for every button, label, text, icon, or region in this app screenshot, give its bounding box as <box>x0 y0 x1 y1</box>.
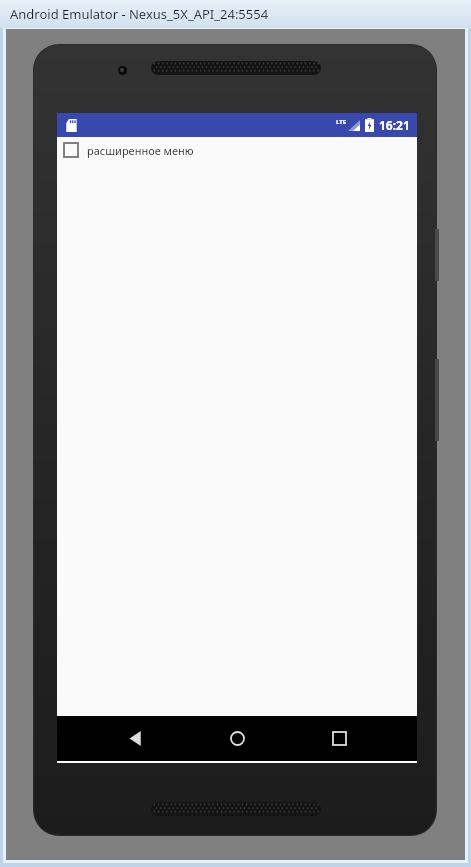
button[interactable]: расширенное меню <box>57 137 417 163</box>
button[interactable]: Home <box>213 716 261 761</box>
staticText: 16:21 <box>379 117 410 133</box>
button[interactable]: Recent apps <box>315 716 363 761</box>
staticText: Android Emulator - Nexus_5X_API_24:5554 <box>10 5 269 23</box>
button[interactable]: Back <box>111 716 159 761</box>
staticText: LTE <box>336 118 347 126</box>
staticText: расширенное меню <box>87 143 194 158</box>
